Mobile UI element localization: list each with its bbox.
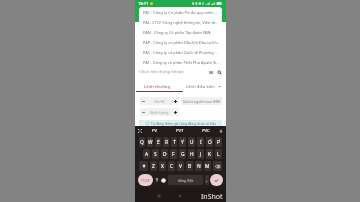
staticText: Lệnh điều kiện (186, 84, 215, 90)
button[interactable]: Tự động thêm giá cộng đồng chưa sở hữu c… (139, 120, 222, 126)
button[interactable]: S (152, 149, 159, 159)
button[interactable]: Shift (139, 161, 148, 171)
staticText: G (181, 151, 185, 158)
other: Keyboard menu (138, 129, 142, 133)
button[interactable]: Sticker (154, 175, 159, 185)
button[interactable]: A (143, 149, 150, 159)
staticText: L (217, 151, 220, 158)
staticText: 5 (174, 137, 176, 140)
staticText: W (148, 139, 153, 146)
button[interactable]: Y (179, 137, 186, 147)
button[interactable]: I (197, 137, 204, 147)
staticText: 2 (150, 137, 152, 140)
button[interactable]: B (186, 161, 193, 171)
button[interactable]: PVT (167, 126, 193, 136)
staticText: PV (152, 128, 158, 134)
button[interactable]: ?123 (138, 174, 153, 186)
button[interactable]: PAP - Công ty cổ phần Dầu khí Đầu tư kha… (139, 37, 222, 47)
button[interactable]: Chọn mã chứng khoán (139, 68, 222, 76)
staticText: 9 (210, 137, 212, 140)
staticText: P (217, 139, 220, 146)
button[interactable]: PAS - Công ty cổ phần Quốc tế Phương Anh (139, 47, 222, 57)
staticText: I (200, 139, 202, 146)
other: Scan code (209, 70, 214, 75)
other: Decrease (142, 111, 145, 114)
staticText: Tự động thêm giá cộng đồng chưa sở hữu c… (151, 121, 222, 125)
button[interactable]: Decrease (140, 108, 179, 116)
other: Voice input (219, 129, 223, 133)
button[interactable]: PV (142, 126, 167, 136)
staticText: T (173, 139, 176, 146)
staticText: S (154, 151, 157, 158)
button[interactable]: . (205, 175, 209, 185)
button[interactable]: N (195, 161, 202, 171)
button[interactable]: L (215, 149, 222, 159)
button[interactable]: PAC - Công ty Cổ phần Pin Ắc quy miền Na… (139, 7, 222, 17)
staticText: Giá ĐC (154, 99, 166, 104)
staticText: J (200, 151, 202, 158)
button[interactable]: Giá từ người mua (KM) (181, 97, 222, 105)
staticText: H (190, 151, 194, 158)
button[interactable]: U (188, 137, 195, 147)
button[interactable]: E (155, 137, 161, 147)
button[interactable]: V (177, 161, 184, 171)
button[interactable]: O (206, 137, 213, 147)
button[interactable]: Q (139, 137, 145, 147)
staticText: O (208, 139, 212, 146)
staticText: K (208, 151, 211, 158)
other: Increase (174, 100, 177, 103)
staticText: PAS - Công ty cổ phần Quốc tế Phương Anh (143, 50, 220, 55)
button[interactable]: Z (150, 161, 157, 171)
button[interactable]: PVC (193, 126, 219, 136)
button[interactable]: J (197, 149, 204, 159)
staticText: V (179, 163, 182, 170)
button[interactable]: Lệnh thường (135, 83, 180, 90)
staticText: PAN - Công ty Cổ phần Tập đoàn PAN (143, 30, 211, 35)
button[interactable]: G (179, 149, 186, 159)
button[interactable]: Decrease (140, 97, 179, 105)
button[interactable]: tiếng Việt (168, 175, 203, 185)
button[interactable]: Enter (210, 174, 223, 186)
button[interactable]: D (161, 149, 168, 159)
other: Increase (174, 111, 177, 114)
button[interactable]: K (206, 149, 213, 159)
button[interactable]: W (147, 137, 153, 147)
staticText: ?123 (141, 178, 150, 183)
staticText: Giá từ người mua (KM) (183, 99, 221, 104)
staticText: . (206, 177, 208, 183)
staticText: B (188, 163, 192, 170)
staticText: PVT (176, 128, 184, 134)
button[interactable]: M (204, 161, 211, 171)
button[interactable]: Emoji (161, 175, 166, 185)
button[interactable]: P (215, 137, 222, 147)
staticText: 8 (201, 137, 203, 140)
staticText: PAP - Công ty cổ phần Dầu khí Đầu tư kha… (143, 40, 220, 45)
staticText: Lệnh thường (144, 84, 171, 90)
staticText: 7 (192, 137, 194, 140)
staticText: Chọn mã chứng khoán (139, 69, 184, 75)
other: Decrease (142, 100, 145, 103)
button[interactable]: H (188, 149, 195, 159)
staticText: A (145, 151, 149, 158)
staticText: 6 (183, 137, 185, 140)
staticText: 3 (158, 137, 160, 140)
button[interactable]: Backspace (213, 161, 222, 171)
button[interactable]: PAI - CTCP Công nghệ thông tin, Viễn thô… (139, 17, 222, 27)
button[interactable]: F (170, 149, 177, 159)
button[interactable]: C (168, 161, 175, 171)
button[interactable]: Lệnh điều kiện (180, 83, 226, 90)
staticText: X (161, 163, 164, 170)
staticText: 4 (166, 137, 168, 140)
staticText: Khối lượng (150, 110, 169, 115)
button[interactable]: PAT - Công ty cổ phần Phốt Pho Apatit Vi… (139, 57, 222, 67)
other: Search (217, 70, 222, 75)
staticText: PAC - Công ty Cổ phần Pin Ắc quy miền Na… (143, 10, 220, 15)
button[interactable]: X (159, 161, 166, 171)
button[interactable]: PAN - Công ty Cổ phần Tập đoàn PAN (139, 27, 222, 37)
staticText: 1 (142, 137, 144, 140)
button[interactable]: T (171, 137, 177, 147)
button[interactable]: R (163, 137, 169, 147)
staticText: E (157, 139, 160, 146)
